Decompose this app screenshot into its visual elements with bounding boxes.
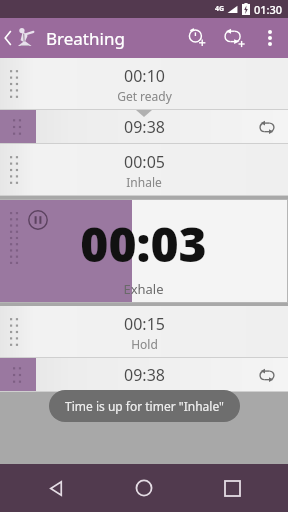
button[interactable]: 09:38	[0, 358, 288, 392]
staticText: 00:10	[124, 65, 165, 87]
staticText: Time is up for timer "Inhale"	[65, 398, 224, 414]
button[interactable]: Home	[112, 464, 176, 512]
button[interactable]: Back	[24, 464, 88, 512]
button[interactable]: Pause	[0, 200, 287, 302]
button[interactable]: Loop	[256, 364, 278, 386]
staticText: 09:38	[124, 364, 165, 386]
button[interactable]: 00:05	[0, 144, 288, 196]
button[interactable]: 00:10	[0, 58, 288, 110]
button[interactable]: Add timer	[178, 18, 216, 58]
button[interactable]: Add loop	[216, 18, 254, 58]
button[interactable]: 00:15	[0, 306, 288, 358]
button[interactable]: 09:38	[0, 110, 288, 144]
staticText: 09:38	[124, 116, 165, 138]
staticText: 00:05	[124, 151, 165, 173]
staticText: Inhale	[126, 174, 162, 190]
button[interactable]: Pause	[26, 208, 50, 232]
staticText: 4G	[215, 4, 225, 14]
staticText: Breathing	[46, 27, 125, 50]
staticText: Hold	[131, 336, 158, 352]
staticText: 00:15	[124, 313, 165, 335]
button[interactable]: Navigate up	[0, 21, 40, 55]
staticText: Get ready	[117, 88, 172, 104]
button[interactable]: More options	[254, 18, 286, 58]
staticText: 01:30	[254, 2, 283, 17]
button[interactable]: Recents	[200, 464, 264, 512]
button[interactable]: Loop	[256, 116, 278, 138]
staticText: Exhale	[123, 280, 164, 298]
staticText: 00:03	[80, 211, 207, 276]
